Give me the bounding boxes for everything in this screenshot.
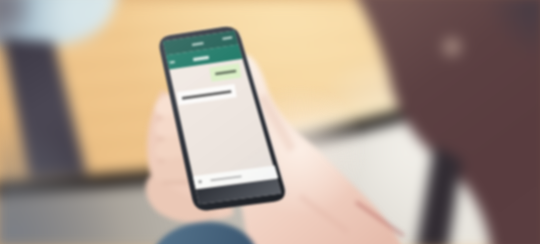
button[interactable]: Chat conversation — [0, 0, 540, 244]
